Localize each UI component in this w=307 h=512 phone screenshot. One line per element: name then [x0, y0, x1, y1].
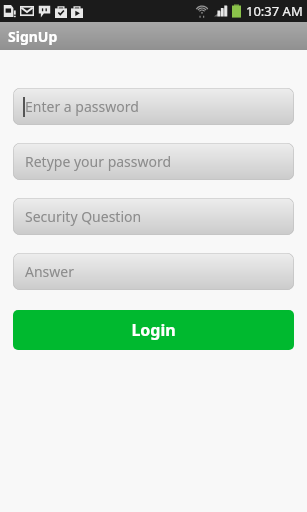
staticText: Retype your password [25, 152, 172, 171]
staticText: SignUp [8, 27, 58, 46]
staticText: 10:37 AM [246, 2, 303, 20]
button[interactable]: Answer [13, 253, 294, 290]
staticText: Login [131, 319, 176, 341]
staticText: Enter a password [25, 97, 139, 116]
button[interactable]: Login [13, 310, 294, 350]
button[interactable]: Security Question [13, 198, 294, 235]
button[interactable]: Enter a password [13, 88, 294, 125]
staticText: Security Question [25, 207, 142, 226]
staticText: Answer [25, 262, 74, 281]
button[interactable]: Retype your password [13, 143, 294, 180]
